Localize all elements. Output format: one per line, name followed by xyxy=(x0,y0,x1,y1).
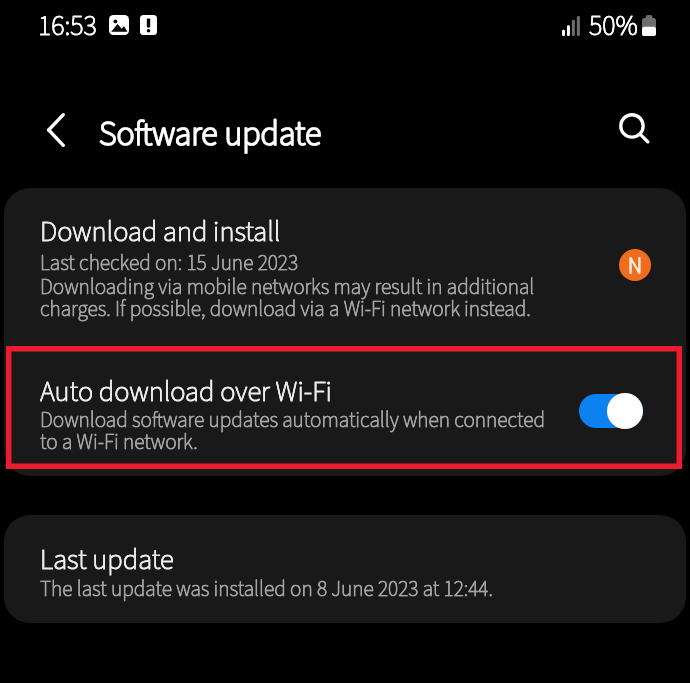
staticText: Software update xyxy=(99,110,322,158)
staticText: Auto download over Wi-Fi xyxy=(40,372,332,413)
staticText: Software update xyxy=(99,110,322,158)
button[interactable]: Auto download over Wi-Fi, on xyxy=(571,387,651,435)
button[interactable]: Back xyxy=(26,100,86,160)
staticText: Last checked on: 15 June 2023 xyxy=(40,248,299,278)
staticText: Auto download over Wi-Fi xyxy=(40,372,332,413)
staticText: Download software updates automatically … xyxy=(40,405,545,458)
staticText: N xyxy=(628,250,642,281)
staticText: 50% xyxy=(589,6,638,46)
staticText: The last update was installed on 8 June … xyxy=(40,574,493,604)
staticText: Downloading via mobile networks may resu… xyxy=(40,272,540,325)
staticText: Download software updates automatically … xyxy=(40,405,545,458)
staticText: 16:53 xyxy=(38,6,97,46)
staticText: Last checked on: 15 June 2023 xyxy=(40,248,299,278)
staticText: The last update was installed on 8 June … xyxy=(40,574,493,604)
staticText: N xyxy=(628,250,642,281)
staticText: Downloading via mobile networks may resu… xyxy=(40,272,540,325)
staticText: Last update xyxy=(40,540,174,581)
staticText: Last update xyxy=(40,540,174,581)
staticText: Download and install xyxy=(40,212,281,253)
staticText: 16:53 xyxy=(38,6,97,46)
button[interactable]: Download and install xyxy=(4,188,686,346)
button[interactable]: Search xyxy=(604,98,664,158)
staticText: 50% xyxy=(589,6,638,46)
button[interactable]: Last update xyxy=(4,515,686,623)
staticText: Download and install xyxy=(40,212,281,253)
button[interactable]: Auto download over Wi-Fi xyxy=(4,346,686,476)
